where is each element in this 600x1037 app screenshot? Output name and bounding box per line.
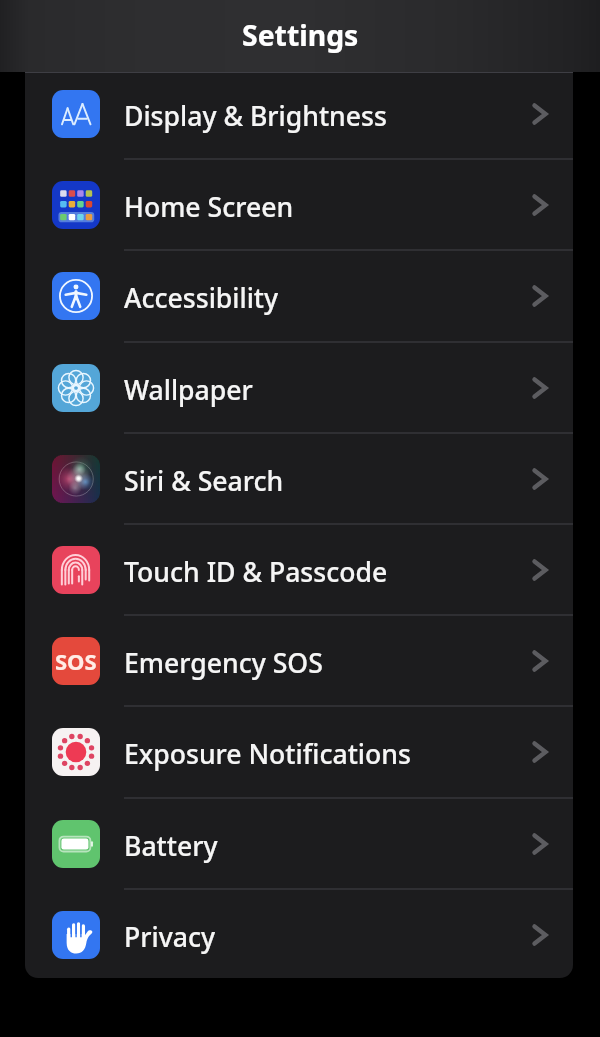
other: Open Wallpaper — [531, 376, 549, 400]
other: Open Emergency SOS — [531, 649, 549, 673]
button[interactable]: Touch ID & Passcode — [25, 524, 573, 615]
other: Open Siri & Search — [531, 467, 549, 491]
button[interactable]: Home Screen — [25, 159, 573, 250]
staticText: Battery — [124, 828, 218, 864]
staticText: Touch ID & Passcode — [124, 554, 388, 590]
staticText: Exposure Notifications — [124, 736, 411, 772]
staticText: Emergency SOS — [124, 645, 323, 681]
staticText: Wallpaper — [124, 372, 253, 408]
staticText: Display & Brightness — [124, 98, 387, 134]
staticText: SOS — [55, 646, 97, 676]
button[interactable]: Accessibility — [25, 250, 573, 341]
button[interactable]: Display & Brightness — [25, 72, 573, 159]
staticText: Siri & Search — [124, 463, 284, 499]
other: Open Exposure Notifications — [531, 740, 549, 764]
button[interactable]: Battery — [25, 798, 573, 889]
other: Open Home Screen — [531, 193, 549, 217]
staticText: Home Screen — [124, 189, 294, 225]
other: Open Touch ID & Passcode — [531, 558, 549, 582]
button[interactable]: Siri & Search — [25, 433, 573, 524]
other: Open Accessibility — [531, 284, 549, 308]
other: Open Display & Brightness — [531, 102, 549, 126]
other: Open Battery — [531, 832, 549, 856]
button[interactable]: SOS — [25, 615, 573, 706]
staticText: Privacy — [124, 919, 215, 955]
button[interactable]: Exposure Notifications — [25, 706, 573, 797]
staticText: Accessibility — [124, 280, 279, 316]
button[interactable]: Wallpaper — [25, 342, 573, 433]
other: Open Privacy — [531, 923, 549, 947]
button[interactable]: Privacy — [25, 889, 573, 978]
staticText: Settings — [242, 16, 359, 55]
